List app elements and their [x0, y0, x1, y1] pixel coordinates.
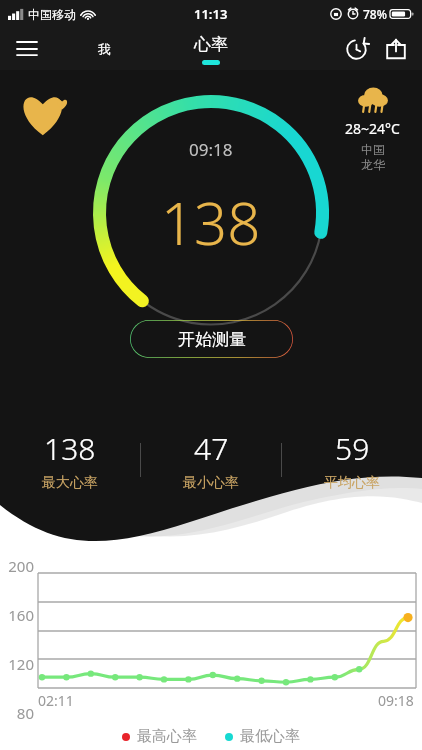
staticText: 09:18 [189, 138, 233, 161]
staticText: 平均心率 [324, 474, 380, 492]
staticText: 开始测量 [178, 329, 246, 350]
staticText: 120 [0, 654, 34, 674]
button[interactable]: 最低心率 [225, 727, 300, 746]
staticText: 160 [0, 605, 34, 625]
staticText: 最小心率 [183, 474, 239, 492]
button[interactable]: 47 [141, 428, 281, 492]
button[interactable]: Share [376, 29, 416, 69]
staticText: 59 [335, 428, 370, 469]
staticText: 02:11 [38, 691, 74, 710]
staticText: 80 [0, 703, 34, 723]
staticText: 11:13 [194, 5, 228, 23]
button[interactable]: Menu [8, 30, 46, 68]
staticText: 200 [0, 556, 34, 576]
staticText: 龙华 [361, 157, 385, 172]
button[interactable]: 59 [282, 428, 422, 492]
staticText: 心率 [194, 34, 228, 55]
staticText: 最高心率 [137, 727, 197, 746]
staticText: 78% [363, 6, 387, 22]
button[interactable]: 开始测量 [130, 320, 293, 358]
staticText: 最大心率 [42, 474, 98, 492]
button[interactable]: 最高心率 [122, 727, 197, 746]
button[interactable]: Device [85, 30, 123, 68]
staticText: 我 [98, 41, 111, 57]
staticText: 中国 [361, 142, 385, 157]
staticText: 138 [161, 183, 261, 262]
button[interactable]: History [336, 29, 376, 69]
button[interactable]: 138 [0, 428, 140, 492]
staticText: 28~24°C [345, 119, 400, 138]
staticText: 中国移动 [28, 7, 76, 22]
staticText: 138 [44, 428, 96, 469]
staticText: 09:18 [378, 691, 414, 710]
staticText: 最低心率 [240, 727, 300, 746]
staticText: 47 [194, 428, 229, 469]
